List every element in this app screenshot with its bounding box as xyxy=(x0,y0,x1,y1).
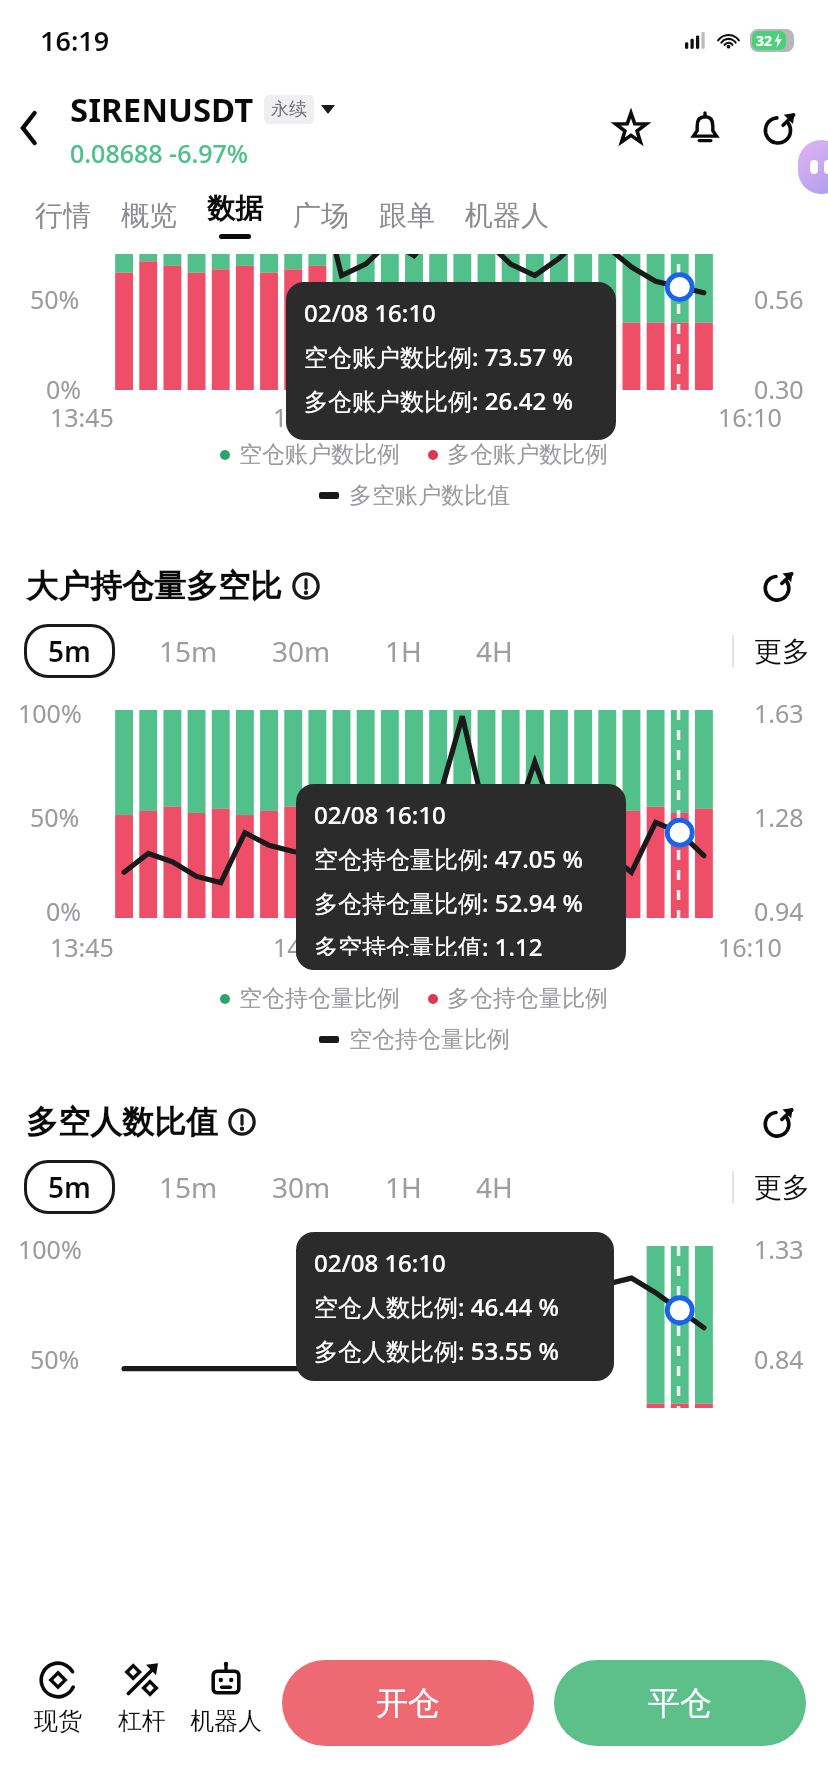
button[interactable]: 4H xyxy=(466,624,523,678)
button[interactable]: Alerts xyxy=(678,101,732,155)
staticText: 开仓 xyxy=(376,1683,440,1723)
button[interactable]: Expand chart xyxy=(754,1098,802,1146)
staticText: 0.30 xyxy=(754,372,804,406)
staticText: 30m xyxy=(272,632,331,670)
button[interactable]: Expand chart xyxy=(754,562,802,610)
staticText: 0.94 xyxy=(754,894,804,928)
button[interactable]: Margin xyxy=(100,1660,184,1736)
button[interactable]: 5m xyxy=(24,1160,115,1214)
button[interactable]: 更多 xyxy=(754,634,810,669)
button[interactable]: Spot xyxy=(16,1660,100,1736)
staticText: 5m xyxy=(48,632,91,670)
staticText: 13:45 xyxy=(50,400,114,434)
staticText: 0.08688 -6.97% xyxy=(70,136,249,170)
staticText: 50% xyxy=(30,282,80,316)
staticText: 永续 xyxy=(271,98,307,121)
staticText: 杠杆 xyxy=(118,1706,166,1736)
staticText: 14:30 xyxy=(273,400,337,434)
staticText: 1.33 xyxy=(754,1232,804,1266)
staticText: 1H xyxy=(385,632,422,670)
staticText: 32 xyxy=(756,31,773,50)
staticText: 15m xyxy=(159,1168,218,1206)
staticText: 13:45 xyxy=(50,930,114,964)
staticText: 多空账户数比值 xyxy=(349,481,510,510)
button[interactable]: Assistant xyxy=(798,140,828,194)
button[interactable]: Bot xyxy=(184,1660,268,1736)
button[interactable]: 15m xyxy=(149,624,228,678)
button[interactable]: 30m xyxy=(262,624,341,678)
staticText: 02/08 16:10 xyxy=(314,1246,446,1279)
staticText: 16:19 xyxy=(40,22,110,59)
button[interactable]: 机器人 xyxy=(465,176,549,254)
staticText: 行情 xyxy=(35,198,91,233)
staticText: 多仓账户数比例 xyxy=(447,440,608,469)
staticText: 1H xyxy=(385,1168,422,1206)
staticText: 0% xyxy=(46,372,82,406)
button[interactable]: 行情 xyxy=(35,176,91,254)
staticText: 现货 xyxy=(34,1706,82,1736)
staticText: 5m xyxy=(48,1168,91,1206)
staticText: 广场 xyxy=(293,198,349,233)
button[interactable]: 平仓 xyxy=(554,1660,806,1746)
button[interactable]: 15m xyxy=(149,1160,228,1214)
staticText: 16:10 xyxy=(718,400,782,434)
staticText: 100% xyxy=(18,1232,82,1266)
staticText: 概览 xyxy=(121,198,177,233)
button[interactable]: 概览 xyxy=(121,176,177,254)
staticText: 4H xyxy=(476,632,513,670)
staticText: 0.56 xyxy=(754,282,804,316)
staticText: 跟单 xyxy=(379,198,435,233)
staticText: 多空人数比值 xyxy=(26,1102,218,1142)
button[interactable]: 5m xyxy=(24,624,115,678)
staticText: 14:30 xyxy=(273,930,337,964)
staticText: 0% xyxy=(46,894,82,928)
button[interactable]: 开仓 xyxy=(282,1660,534,1746)
staticText: 空仓持仓量比例 xyxy=(239,984,400,1013)
staticText: 空仓账户数比例: 73.57 % xyxy=(304,340,573,373)
staticText: 更多 xyxy=(754,634,810,669)
staticText: 多仓人数比例: 53.55 % xyxy=(314,1334,559,1367)
staticText: 15m xyxy=(159,632,218,670)
staticText: 机器人 xyxy=(465,198,549,233)
staticText: 1.63 xyxy=(754,696,804,730)
button[interactable]: 30m xyxy=(262,1160,341,1214)
staticText: 多仓账户数比例: 26.42 % xyxy=(304,384,573,417)
staticText: 多仓持仓量比例: 52.94 % xyxy=(314,886,583,919)
button[interactable]: 数据 xyxy=(207,176,263,254)
staticText: 0.84 xyxy=(754,1342,804,1376)
button[interactable]: 更多 xyxy=(754,1170,810,1205)
staticText: 50% xyxy=(30,1342,80,1376)
staticText: 16:10 xyxy=(718,930,782,964)
staticText: 多仓持仓量比例 xyxy=(447,984,608,1013)
button[interactable]: 1H xyxy=(375,624,432,678)
staticText: 机器人 xyxy=(190,1706,262,1736)
staticText: SIRENUSDT xyxy=(70,87,254,132)
staticText: 02/08 16:10 xyxy=(304,296,436,329)
staticText: 空仓人数比例: 46.44 % xyxy=(314,1290,559,1323)
staticText: 100% xyxy=(18,696,82,730)
button[interactable]: Share xyxy=(752,101,806,155)
staticText: 1.28 xyxy=(754,800,804,834)
staticText: 空仓账户数比例 xyxy=(239,440,400,469)
staticText: 数据 xyxy=(207,191,263,226)
staticText: 多空持仓量比值: 1.12 xyxy=(314,930,543,956)
staticText: 空仓持仓量比例: 47.05 % xyxy=(314,842,583,875)
staticText: 30m xyxy=(272,1168,331,1206)
staticText: 02/08 16:10 xyxy=(314,798,446,831)
staticText: 平仓 xyxy=(648,1683,712,1723)
button[interactable]: 1H xyxy=(375,1160,432,1214)
button[interactable]: Back xyxy=(0,99,58,157)
staticText: 15:20 xyxy=(495,400,559,434)
staticText: 更多 xyxy=(754,1170,810,1205)
staticText: 50% xyxy=(30,800,80,834)
button[interactable]: 跟单 xyxy=(379,176,435,254)
staticText: 4H xyxy=(476,1168,513,1206)
button[interactable]: 广场 xyxy=(293,176,349,254)
button[interactable]: 4H xyxy=(466,1160,523,1214)
staticText: 15:20 xyxy=(495,930,559,964)
staticText: 大户持仓量多空比 xyxy=(26,566,282,606)
staticText: 空仓持仓量比例 xyxy=(349,1025,510,1054)
button[interactable]: Favorite xyxy=(604,101,658,155)
